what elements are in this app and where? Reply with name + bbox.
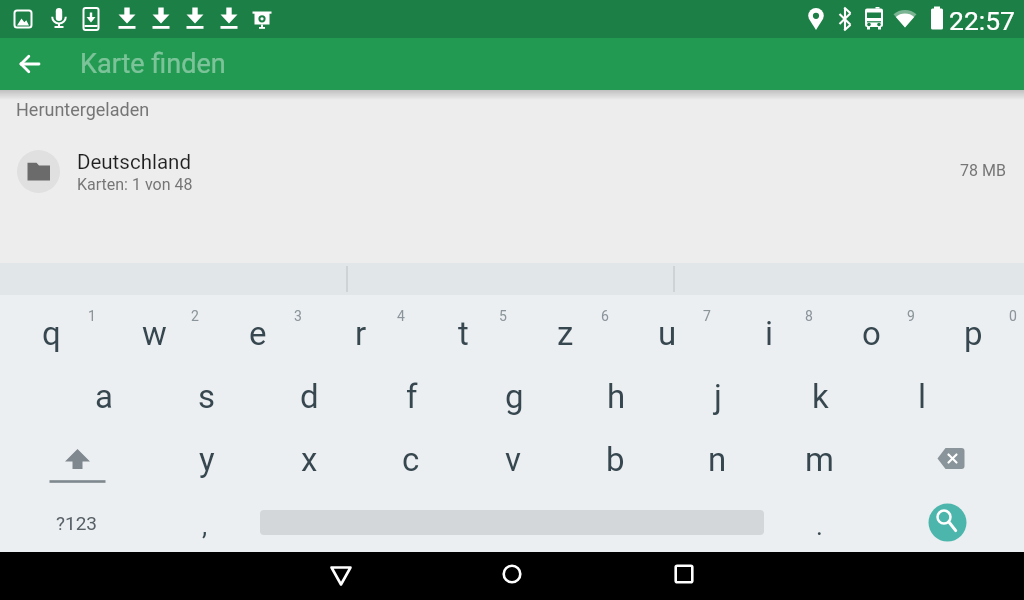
button[interactable]: l [871,360,973,424]
staticText: m [805,440,834,479]
button[interactable]: n [666,424,768,488]
staticText: 78 MB [960,161,1006,180]
staticText: d [300,377,319,416]
staticText: a [95,377,113,416]
staticText: h [607,377,626,416]
button[interactable]: p [922,295,1024,360]
button[interactable]: h [565,360,667,424]
button[interactable] [488,554,536,598]
staticText: , [202,511,208,541]
button[interactable]: t [412,295,514,360]
staticText: n [708,440,727,479]
staticText: l [918,377,927,416]
staticText: 0 [1009,308,1017,324]
staticText: Karten: 1 von 48 [77,175,193,194]
button[interactable]: j [667,360,769,424]
staticText: 5 [499,308,507,324]
button[interactable] [660,554,708,598]
staticText: Karte finden [80,48,226,80]
button[interactable]: q [0,295,103,360]
staticText: 2 [191,308,199,324]
staticText: u [658,314,677,353]
staticText: . [816,511,823,541]
staticText: 22:57 [949,5,1015,36]
button[interactable]: a [52,360,155,424]
staticText: 7 [703,308,711,324]
staticText: ?123 [56,512,98,534]
staticText: 9 [907,308,915,324]
staticText: c [402,440,420,479]
staticText: f [406,377,418,416]
button[interactable]: i [718,295,820,360]
button[interactable]: o [820,295,922,360]
button[interactable]: r [309,295,412,360]
button[interactable]: y [155,424,258,488]
button[interactable]: v [462,424,564,488]
staticText: 4 [397,308,405,324]
button[interactable]: ?123 [0,488,154,552]
button[interactable]: c [360,424,462,488]
button[interactable] [256,488,768,552]
staticText: v [505,440,521,479]
staticText: x [301,440,318,479]
button[interactable] [317,554,365,598]
staticText: k [812,377,829,416]
staticText: 6 [601,308,609,324]
staticText: p [964,314,983,353]
staticText: s [198,377,216,416]
button[interactable]: x [258,424,360,488]
staticText: g [505,377,524,416]
staticText: 8 [805,308,813,324]
staticText: 1 [88,308,96,324]
button[interactable]: Deutschland [0,130,1024,215]
staticText: z [557,314,574,353]
button[interactable] [12,46,48,82]
staticText: 3 [294,308,302,324]
button[interactable]: k [769,360,871,424]
staticText: o [862,314,881,353]
button[interactable]: w [103,295,206,360]
staticText: Heruntergeladen [16,99,150,120]
staticText: i [765,314,774,353]
staticText: e [249,314,267,353]
staticText: t [458,314,469,353]
staticText: w [142,314,167,353]
staticText: Deutschland [77,150,191,174]
button[interactable]: b [564,424,666,488]
button[interactable] [870,488,1024,552]
button[interactable]: g [463,360,565,424]
button[interactable]: z [514,295,616,360]
button[interactable]: . [768,488,870,552]
staticText: y [199,440,215,479]
button[interactable]: d [258,360,361,424]
button[interactable]: u [616,295,718,360]
button[interactable]: s [155,360,258,424]
button[interactable] [0,424,155,488]
staticText: j [714,377,722,416]
button[interactable]: m [768,424,870,488]
staticText: b [606,440,625,479]
button[interactable]: , [154,488,256,552]
staticText: q [42,314,61,353]
button[interactable] [870,424,1024,488]
staticText: r [355,314,367,353]
button[interactable]: e [206,295,309,360]
button[interactable]: f [361,360,463,424]
